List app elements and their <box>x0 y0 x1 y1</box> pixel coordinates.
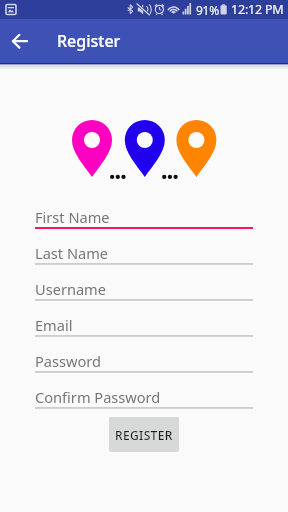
staticText: 12:12 PM <box>231 1 284 18</box>
staticText: Email <box>35 315 73 335</box>
staticText: Last Name <box>35 243 109 263</box>
button[interactable]: Back <box>8 26 38 56</box>
button[interactable]: REGISTER <box>109 417 179 452</box>
staticText: 91% <box>196 2 219 18</box>
staticText: Username <box>35 279 106 299</box>
staticText: Confirm Password <box>35 387 161 407</box>
staticText: Password <box>35 351 102 371</box>
staticText: Register <box>57 30 121 52</box>
staticText: REGISTER <box>115 427 173 443</box>
staticText: First Name <box>35 207 110 227</box>
